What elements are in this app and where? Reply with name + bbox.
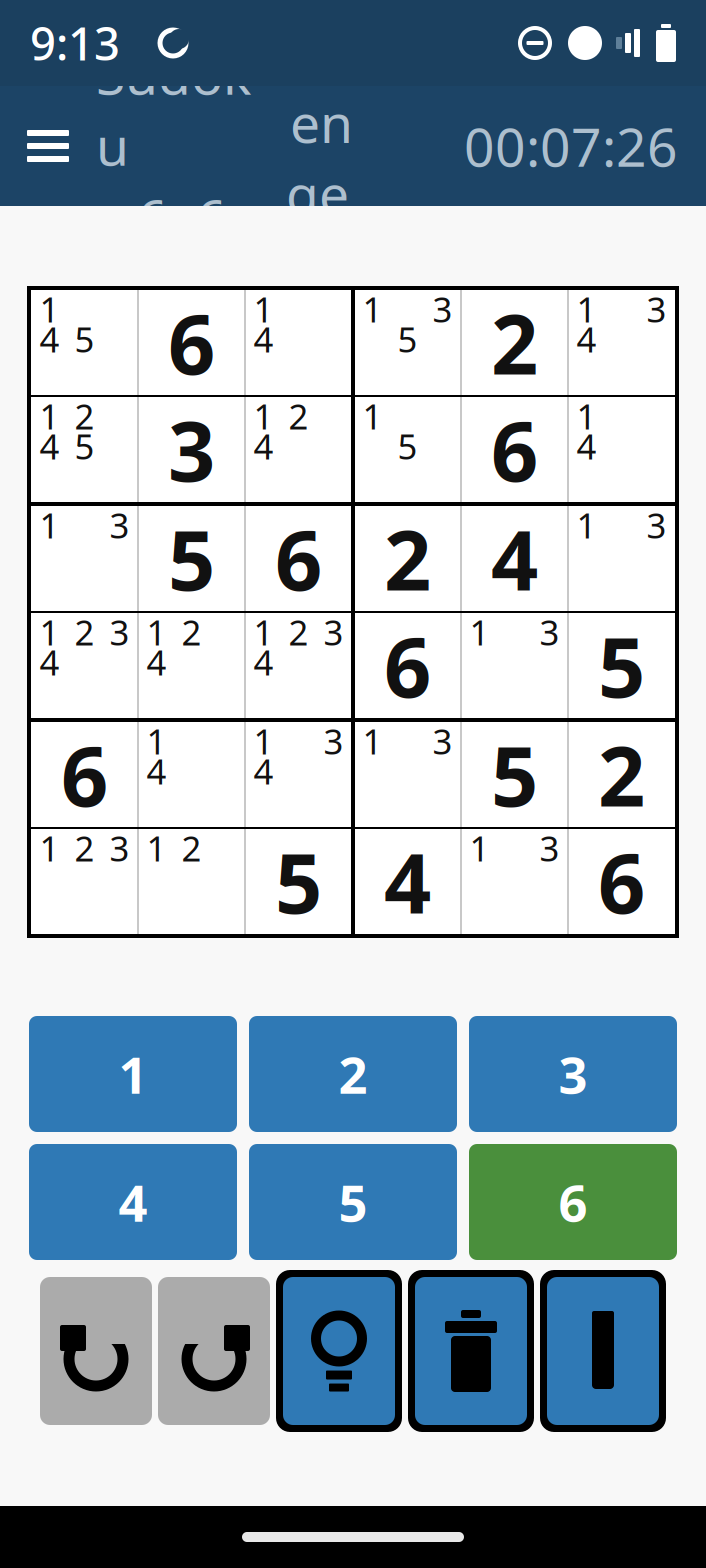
button[interactable]: 3 (139, 397, 244, 502)
button[interactable]: 1 (355, 397, 460, 502)
staticText: 1 (39, 609, 59, 655)
staticText (368, 423, 377, 469)
button[interactable]: 1 (29, 1016, 237, 1132)
button[interactable]: 5 (246, 829, 351, 934)
button[interactable]: 2 (462, 290, 567, 395)
button[interactable]: 1 (355, 290, 460, 395)
button[interactable]: 5 (249, 1144, 457, 1260)
staticText: 4 (146, 639, 166, 685)
button[interactable]: 5 (462, 722, 567, 827)
button[interactable]: 1 (32, 290, 137, 395)
button[interactable]: 1 (32, 613, 137, 718)
button[interactable]: 5 (139, 506, 244, 611)
staticText: 3 (432, 286, 452, 332)
staticText: 4 (118, 1168, 147, 1236)
button[interactable]: 6 (32, 722, 137, 827)
staticText: 4 (39, 316, 59, 362)
button[interactable]: 1 (246, 722, 351, 827)
staticText (475, 639, 484, 685)
button[interactable]: 6 (355, 613, 460, 718)
staticText: 1 (146, 825, 166, 871)
staticText (187, 639, 196, 685)
button[interactable]: Erase (408, 1270, 534, 1432)
staticText: 5 (598, 611, 645, 720)
button[interactable]: 4 (355, 829, 460, 934)
button[interactable]: 4 (462, 506, 567, 611)
button[interactable]: Notes (540, 1270, 666, 1432)
staticText (115, 855, 124, 901)
staticText (438, 748, 447, 794)
staticText: 1 (253, 286, 273, 332)
staticText (45, 855, 54, 901)
staticText (510, 825, 519, 871)
staticText: 6 (275, 504, 322, 613)
staticText: 5 (397, 316, 417, 362)
staticText (115, 393, 124, 439)
staticText: 1 (39, 502, 59, 548)
button[interactable]: 1 (32, 829, 137, 934)
staticText (368, 748, 377, 794)
button[interactable]: 1 (139, 613, 244, 718)
staticText: 1 (146, 609, 166, 655)
staticText: 1 (39, 286, 59, 332)
button[interactable]: 1 (569, 506, 674, 611)
button[interactable]: 6 (139, 290, 244, 395)
button[interactable]: 1 (569, 397, 674, 502)
button[interactable]: 1 (246, 397, 351, 502)
staticText (222, 718, 231, 764)
staticText (403, 718, 412, 764)
button[interactable]: 6 (246, 506, 351, 611)
staticText: 4 (253, 423, 273, 469)
button[interactable]: 1 (246, 613, 351, 718)
button[interactable]: 1 (32, 506, 137, 611)
staticText: 3 (646, 502, 666, 548)
staticText (617, 393, 626, 439)
button[interactable]: 1 (462, 829, 567, 934)
staticText: 2 (181, 825, 201, 871)
button[interactable]: Undo (40, 1277, 152, 1425)
staticText (403, 393, 412, 439)
button[interactable]: 6 (569, 829, 674, 934)
button[interactable]: 4 (29, 1144, 237, 1260)
staticText: 4 (146, 748, 166, 794)
button[interactable]: Menu (0, 86, 96, 206)
staticText (80, 639, 89, 685)
button[interactable]: 3 (469, 1016, 677, 1132)
staticText (115, 286, 124, 332)
button[interactable]: 1 (569, 290, 674, 395)
button[interactable]: 1 (32, 397, 137, 502)
button[interactable]: 2 (355, 506, 460, 611)
button[interactable]: 2 (249, 1016, 457, 1132)
button[interactable]: 1 (355, 722, 460, 827)
button[interactable]: 1 (462, 613, 567, 718)
staticText: 5 (74, 316, 94, 362)
button[interactable]: Redo (158, 1277, 270, 1425)
button[interactable]: 2 (569, 722, 674, 827)
button[interactable]: 6 (462, 397, 567, 502)
staticText: 6x6 (137, 182, 227, 253)
staticText: 3 (539, 609, 559, 655)
staticText (222, 609, 231, 655)
staticText: 2 (74, 393, 94, 439)
button[interactable]: 6 (469, 1144, 677, 1260)
staticText (545, 639, 554, 685)
button[interactable]: 1 (139, 722, 244, 827)
button[interactable]: Hint (276, 1270, 402, 1432)
staticText: 1 (39, 393, 59, 439)
button[interactable]: 1 (246, 290, 351, 395)
staticText (329, 748, 338, 794)
button[interactable]: 1 (139, 829, 244, 934)
staticText: 6 (168, 288, 215, 397)
staticText: 4 (576, 423, 596, 469)
staticText: 5 (275, 827, 322, 936)
staticText (617, 286, 626, 332)
button[interactable]: 5 (569, 613, 674, 718)
